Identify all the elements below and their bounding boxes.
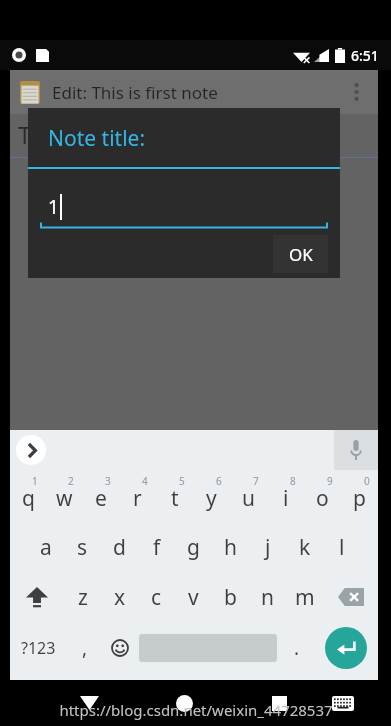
staticText: j bbox=[265, 533, 271, 562]
staticText: r bbox=[133, 484, 142, 513]
button[interactable]: Space bbox=[137, 634, 279, 662]
staticText: 5 bbox=[179, 474, 185, 488]
staticText: u bbox=[242, 484, 255, 513]
button[interactable]: m bbox=[286, 572, 323, 622]
button[interactable]: Expand suggestions bbox=[16, 435, 46, 465]
staticText: q bbox=[22, 484, 35, 513]
staticText: i bbox=[283, 484, 289, 513]
button[interactable]: More options bbox=[344, 72, 368, 112]
staticText: f bbox=[153, 533, 161, 562]
staticText: Note title: bbox=[48, 124, 146, 153]
button[interactable]: l bbox=[323, 522, 360, 572]
button[interactable]: Backspace bbox=[323, 572, 378, 622]
button[interactable]: 7 bbox=[230, 470, 267, 522]
staticText: 3 bbox=[105, 474, 111, 488]
staticText: n bbox=[261, 583, 274, 612]
button[interactable]: 5 bbox=[156, 470, 193, 522]
button[interactable]: 1 bbox=[10, 470, 46, 522]
button[interactable]: 2 bbox=[46, 470, 82, 522]
staticText: v bbox=[188, 583, 199, 612]
button[interactable]: Switch keyboard bbox=[315, 680, 371, 726]
staticText: d bbox=[113, 533, 126, 562]
staticText: g bbox=[187, 533, 200, 562]
staticText: o bbox=[316, 484, 329, 513]
button[interactable]: x bbox=[101, 572, 138, 622]
button[interactable]: g bbox=[175, 522, 212, 572]
staticText: s bbox=[77, 533, 88, 562]
button[interactable]: d bbox=[101, 522, 138, 572]
staticText: 6:51 bbox=[351, 46, 379, 65]
staticText: https://blog.csdn.net/weixin_44728537 bbox=[59, 700, 333, 720]
staticText: 4 bbox=[142, 474, 148, 488]
button[interactable]: Home bbox=[156, 680, 212, 726]
staticText: 2 bbox=[68, 474, 74, 488]
staticText: . bbox=[294, 635, 300, 661]
button[interactable]: Enter bbox=[314, 622, 378, 674]
button[interactable]: v bbox=[175, 572, 212, 622]
staticText: y bbox=[206, 484, 217, 513]
staticText: 0 bbox=[364, 474, 370, 488]
button[interactable]: . bbox=[279, 622, 314, 674]
button[interactable]: Back bbox=[61, 680, 117, 726]
button[interactable]: ?123 bbox=[10, 622, 67, 674]
staticText: ?123 bbox=[21, 637, 56, 659]
button[interactable]: , bbox=[67, 622, 102, 674]
button[interactable]: a bbox=[27, 522, 64, 572]
staticText: 6 bbox=[216, 474, 222, 488]
staticText: m bbox=[295, 583, 315, 612]
staticText: z bbox=[78, 583, 88, 612]
button[interactable]: Recent apps bbox=[251, 680, 307, 726]
staticText: 1 bbox=[48, 194, 59, 220]
staticText: 7 bbox=[253, 474, 259, 488]
button[interactable]: b bbox=[212, 572, 249, 622]
staticText: OK bbox=[289, 243, 313, 266]
staticText: t bbox=[171, 484, 179, 513]
button[interactable]: 9 bbox=[304, 470, 341, 522]
staticText: w bbox=[56, 484, 73, 513]
staticText: 1 bbox=[32, 474, 38, 488]
button[interactable]: Emoji bbox=[102, 622, 137, 674]
button[interactable]: k bbox=[286, 522, 323, 572]
button[interactable]: Voice input bbox=[334, 430, 378, 470]
staticText: This is first note bbox=[18, 118, 197, 151]
staticText: h bbox=[224, 533, 237, 562]
staticText: x bbox=[114, 583, 126, 612]
button[interactable]: c bbox=[138, 572, 175, 622]
staticText: c bbox=[151, 583, 162, 612]
staticText: e bbox=[95, 484, 107, 513]
button[interactable]: 3 bbox=[82, 470, 119, 522]
button[interactable]: 1 bbox=[40, 185, 328, 229]
button[interactable]: 0 bbox=[341, 470, 378, 522]
staticText: p bbox=[353, 484, 366, 513]
staticText: , bbox=[82, 635, 88, 661]
staticText: b bbox=[224, 583, 237, 612]
button[interactable]: OK bbox=[273, 235, 328, 273]
button[interactable]: j bbox=[249, 522, 286, 572]
button[interactable]: h bbox=[212, 522, 249, 572]
button[interactable]: Shift bbox=[10, 572, 64, 622]
staticText: 9 bbox=[327, 474, 333, 488]
staticText: a bbox=[40, 533, 52, 562]
button[interactable]: f bbox=[138, 522, 175, 572]
button[interactable]: 4 bbox=[119, 470, 156, 522]
staticText: k bbox=[299, 533, 311, 562]
button[interactable]: s bbox=[64, 522, 101, 572]
button[interactable]: z bbox=[64, 572, 101, 622]
button[interactable]: n bbox=[249, 572, 286, 622]
staticText: 8 bbox=[290, 474, 296, 488]
button[interactable]: 6 bbox=[193, 470, 230, 522]
button[interactable]: 8 bbox=[267, 470, 304, 522]
staticText: l bbox=[339, 533, 345, 562]
staticText: Edit: This is first note bbox=[52, 81, 218, 104]
